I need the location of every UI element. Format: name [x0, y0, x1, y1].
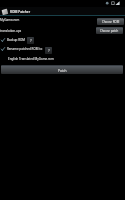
- button[interactable]: Help: backup ROM: [27, 37, 34, 44]
- button[interactable]: Choose ROM: [97, 18, 124, 25]
- staticText: ROM Patcher: [10, 10, 30, 14]
- staticText: Backup ROM: [7, 38, 26, 42]
- button[interactable]: Choose patch: [96, 27, 123, 34]
- staticText: ?: [30, 38, 32, 44]
- staticText: translation.ups: [0, 29, 22, 33]
- button[interactable]: Help: rename patched ROM: [45, 47, 52, 54]
- staticText: MyGame.rom: [0, 18, 20, 22]
- button[interactable]: Patch: [1, 65, 123, 74]
- staticText: Patch: [58, 68, 67, 72]
- staticText: ?: [48, 48, 50, 54]
- staticText: Choose patch: [100, 29, 119, 33]
- staticText: Rename patched ROM to: [7, 47, 43, 51]
- staticText: Choose ROM: [102, 20, 120, 24]
- staticText: English Translated MyGame.rom: [8, 57, 54, 61]
